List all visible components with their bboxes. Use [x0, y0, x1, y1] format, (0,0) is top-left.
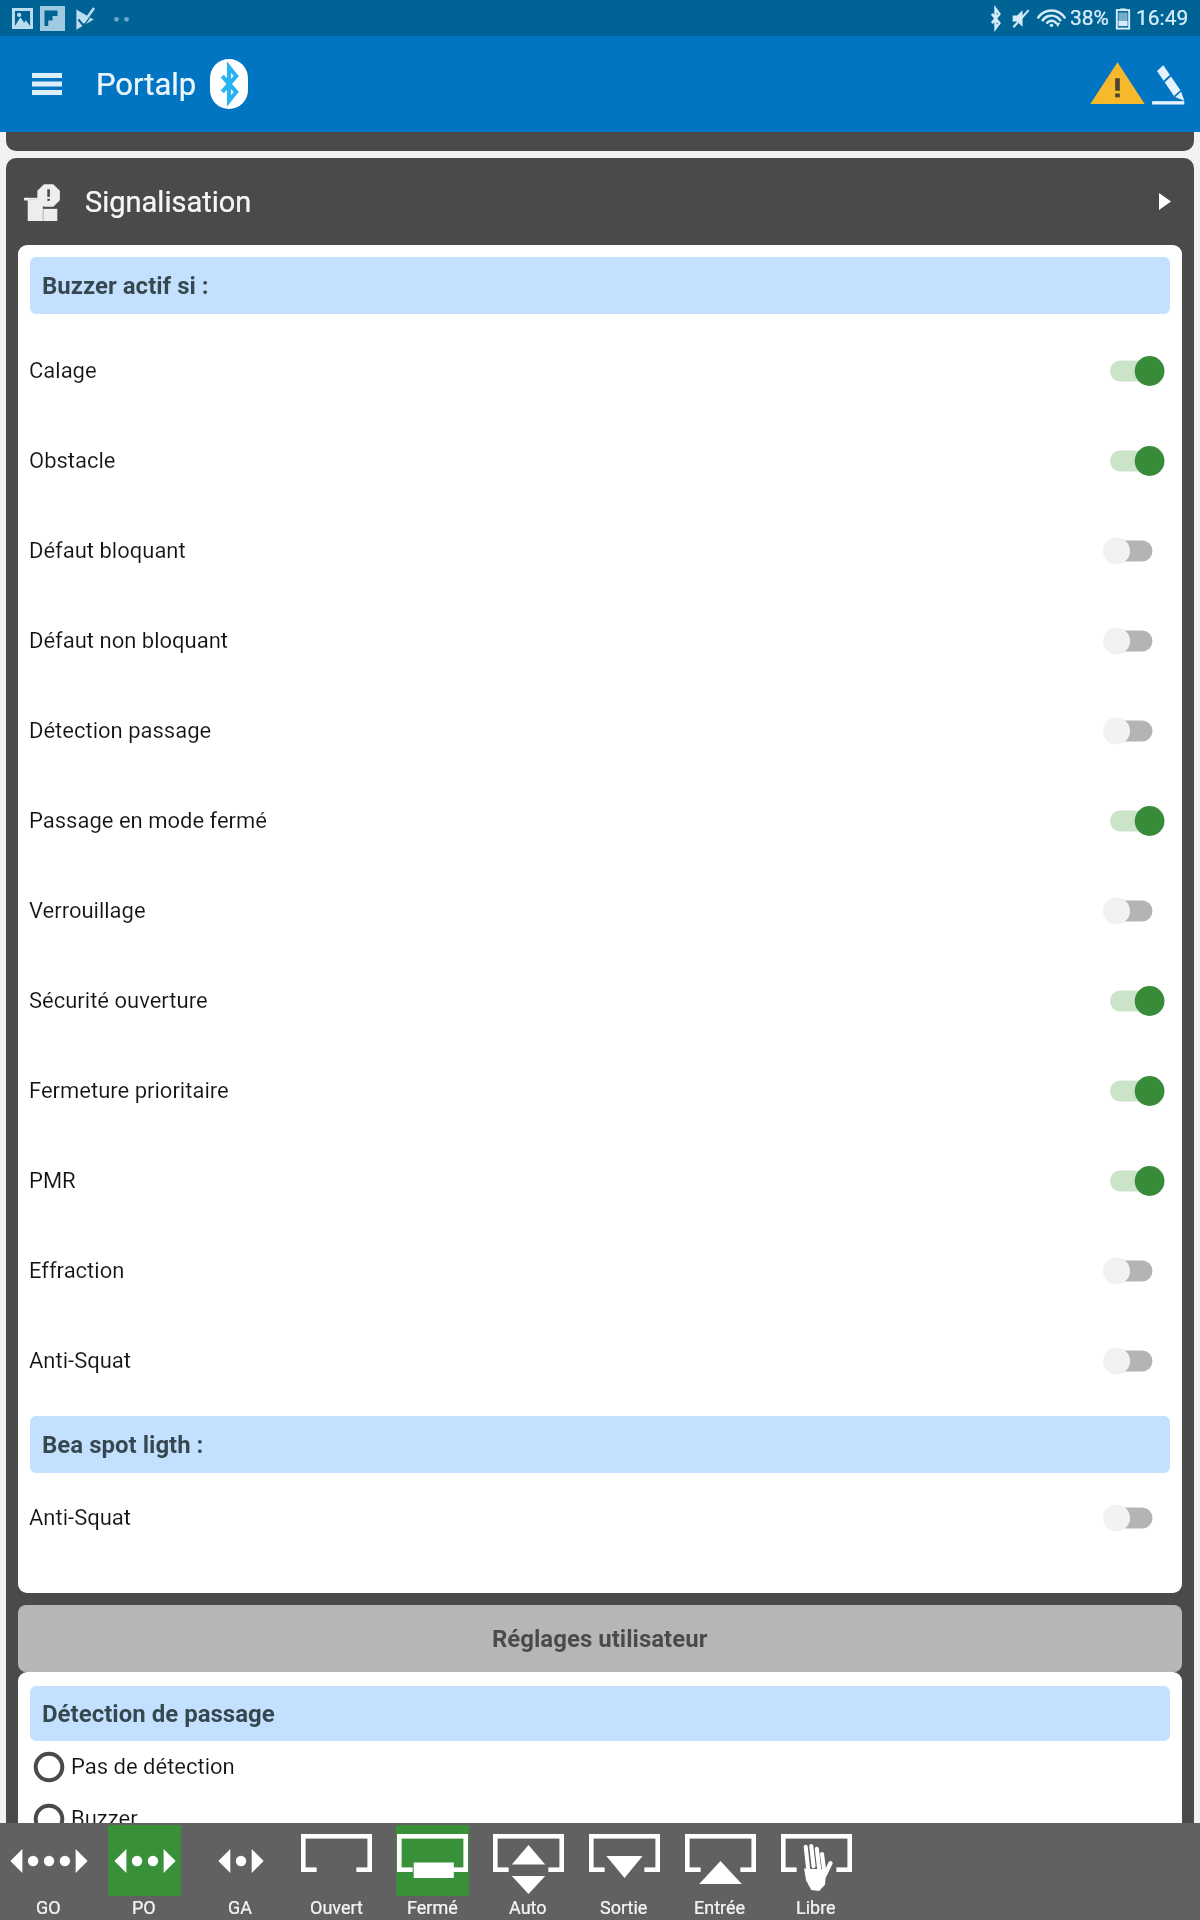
staticText: 38%	[1070, 6, 1109, 31]
staticText: Anti-Squat	[29, 1505, 131, 1531]
staticText: Réglages utilisateur	[492, 1625, 708, 1653]
button[interactable]: Sortie	[576, 1825, 672, 1920]
button[interactable]: Libre	[768, 1825, 864, 1920]
staticText: GA	[228, 1897, 253, 1918]
button[interactable]: Buzzer actif si :	[30, 257, 1170, 314]
staticText: Anti-Squat	[29, 1348, 131, 1374]
button[interactable]: Menu	[18, 55, 76, 113]
staticText: Défaut non bloquant	[29, 628, 228, 654]
staticText: Pas de détection	[71, 1754, 235, 1780]
staticText: PMR	[29, 1168, 76, 1194]
button[interactable]: Sécurité ouverture	[18, 956, 1182, 1046]
staticText: Buzzer	[71, 1806, 138, 1832]
staticText: Bea spot ligth :	[42, 1431, 204, 1459]
staticText: Effraction	[29, 1258, 125, 1284]
staticText: Entrée	[694, 1897, 746, 1918]
button[interactable]: PO	[96, 1825, 192, 1920]
button[interactable]: Entrée	[672, 1825, 768, 1920]
button[interactable]: Signalisation	[6, 158, 1194, 245]
staticText: Passage en mode fermé	[29, 808, 267, 834]
staticText: Auto	[509, 1897, 547, 1918]
button[interactable]: Fermeture prioritaire	[18, 1046, 1182, 1136]
staticText: Obstacle	[29, 448, 116, 474]
button[interactable]: Détection de passage	[30, 1686, 1170, 1741]
staticText: PO	[132, 1897, 156, 1918]
button[interactable]: Edit	[1147, 45, 1187, 123]
button[interactable]: Effraction	[18, 1226, 1182, 1316]
button[interactable]: Détection passage	[18, 686, 1182, 776]
staticText: Fermeture prioritaire	[29, 1078, 229, 1104]
button[interactable]: Buzzer	[18, 1793, 1182, 1845]
button[interactable]: PMR	[18, 1136, 1182, 1226]
button[interactable]: Anti-Squat	[18, 1473, 1182, 1563]
staticText: 16:49	[1136, 6, 1189, 31]
button[interactable]: Bluetooth connection	[210, 59, 248, 109]
button[interactable]: Fermé	[384, 1825, 480, 1920]
button[interactable]: Calage	[18, 326, 1182, 416]
button[interactable]: Auto	[480, 1825, 576, 1920]
staticText: Sortie	[600, 1897, 648, 1918]
staticText: Calage	[29, 358, 97, 384]
staticText: Signalisation	[85, 185, 252, 219]
staticText: Fermé	[407, 1897, 458, 1918]
staticText: Sécurité ouverture	[29, 988, 208, 1014]
button[interactable]: Réglages utilisateur	[18, 1605, 1182, 1672]
staticText: Portalp	[96, 66, 197, 102]
staticText: Ouvert	[310, 1897, 363, 1918]
staticText: Buzzer actif si :	[42, 272, 209, 300]
button[interactable]: Pas de détection	[18, 1741, 1182, 1793]
button[interactable]: Défaut non bloquant	[18, 596, 1182, 686]
button[interactable]: Verrouillage	[18, 866, 1182, 956]
button[interactable]: Warnings	[1085, 45, 1143, 123]
staticText: Détection de passage	[42, 1700, 275, 1728]
button[interactable]: GA	[192, 1825, 288, 1920]
button[interactable]: Passage en mode fermé	[18, 776, 1182, 866]
button[interactable]: Anti-Squat	[18, 1316, 1182, 1406]
staticText: Détection passage	[29, 718, 212, 744]
staticText: Verrouillage	[29, 898, 146, 924]
button[interactable]: Défaut bloquant	[18, 506, 1182, 596]
button[interactable]: Obstacle	[18, 416, 1182, 506]
button[interactable]: Ouvert	[288, 1825, 384, 1920]
staticText: Libre	[796, 1897, 836, 1918]
staticText: GO	[36, 1897, 61, 1918]
button[interactable]: Bea spot ligth :	[30, 1416, 1170, 1473]
staticText: Défaut bloquant	[29, 538, 186, 564]
button[interactable]: GO	[0, 1825, 96, 1920]
